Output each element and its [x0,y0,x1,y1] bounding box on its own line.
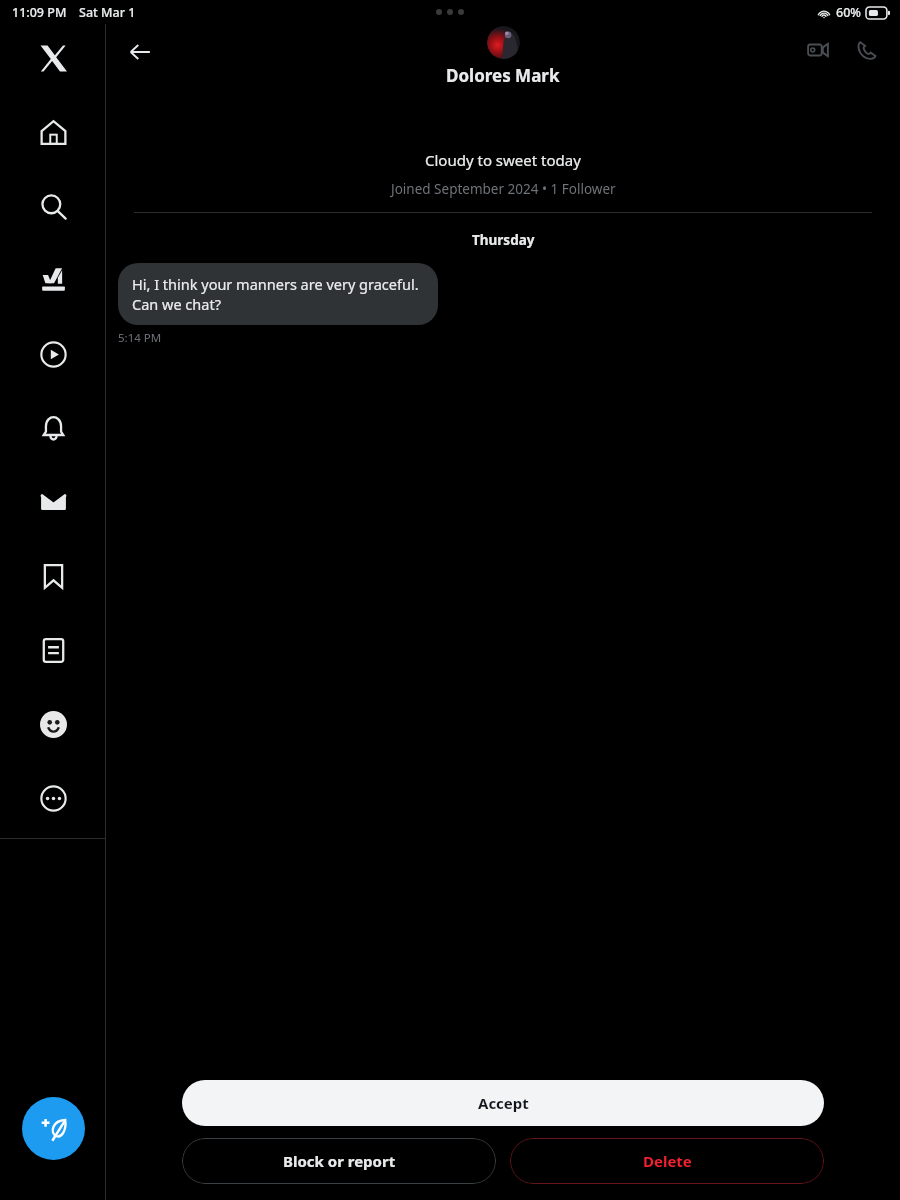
button[interactable]: Video call [798,30,838,70]
staticText: Cloudy to sweet today [425,150,581,170]
button[interactable]: Grok [27,254,79,306]
button[interactable]: Video [27,328,79,380]
button[interactable]: Lists [27,624,79,676]
staticText: Thursday [472,231,535,249]
staticText: Dolores Mark [446,64,560,87]
staticText: Delete [643,1151,692,1171]
staticText: 5:14 PM [118,330,162,346]
button[interactable]: Messages [27,476,79,528]
staticText: 11:09 PM [12,4,67,21]
staticText: Sat Mar 1 [79,4,136,21]
button[interactable]: Delete [510,1138,824,1184]
button[interactable]: Profile photo [487,26,520,59]
button[interactable]: Compose post [22,1097,85,1160]
staticText: Hi, I think your manners are very gracef… [132,274,424,314]
button[interactable]: Home [27,106,79,158]
button[interactable]: Audio call [846,30,886,70]
button[interactable]: Profile [27,698,79,750]
button[interactable]: Accept [182,1080,824,1126]
button[interactable]: X logo [27,32,79,84]
button[interactable]: Search [27,180,79,232]
staticText: Joined September 2024 • 1 Follower [391,180,616,198]
staticText: Accept [478,1093,529,1113]
button[interactable]: Block or report [182,1138,496,1184]
staticText: 60% [836,4,861,21]
button[interactable]: Hi, I think your manners are very gracef… [118,263,438,325]
button[interactable]: More [27,772,79,824]
button[interactable]: Notifications [27,402,79,454]
button[interactable]: Back [118,30,162,74]
button[interactable]: Bookmarks [27,550,79,602]
staticText: Block or report [283,1151,396,1171]
